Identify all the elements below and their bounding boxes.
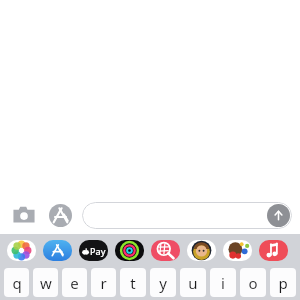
staticText: o: [248, 273, 258, 293]
button[interactable]: iMessage app: [115, 239, 144, 261]
button[interactable]: iMessage app: [151, 239, 180, 261]
button[interactable]: u: [180, 268, 206, 297]
button[interactable]: e: [62, 268, 87, 297]
staticText: Pay: [90, 245, 106, 257]
button[interactable]: r: [91, 268, 116, 297]
staticText: t: [130, 273, 136, 293]
button[interactable]: q: [4, 268, 29, 297]
staticText: e: [70, 273, 79, 293]
button[interactable]: o: [240, 268, 266, 297]
staticText: u: [188, 273, 198, 293]
button[interactable]: i: [210, 268, 236, 297]
staticText: r: [100, 273, 107, 293]
button[interactable]: iMessage app: [259, 239, 288, 261]
staticText: q: [12, 273, 22, 293]
button[interactable]: p: [270, 268, 296, 297]
button[interactable]: iMessage app: [223, 239, 252, 261]
staticText: w: [40, 273, 52, 293]
button[interactable]: App Store: [45, 200, 75, 230]
button[interactable]: Send: [267, 204, 290, 227]
button[interactable]: y: [150, 268, 176, 297]
staticText: i: [221, 273, 225, 293]
button[interactable]: t: [120, 268, 146, 297]
button[interactable]: Send: [82, 202, 292, 229]
button[interactable]: iMessage app: [7, 239, 36, 261]
button[interactable]: Camera: [9, 200, 39, 230]
button[interactable]: w: [33, 268, 58, 297]
button[interactable]: iMessage app: [79, 239, 108, 261]
button[interactable]: iMessage app: [187, 239, 216, 261]
staticText: p: [278, 273, 288, 293]
button[interactable]: iMessage app: [43, 239, 72, 261]
staticText: y: [159, 273, 167, 293]
